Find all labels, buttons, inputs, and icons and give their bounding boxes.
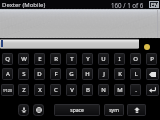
button[interactable]: W: [18, 53, 29, 65]
staticText: E: [38, 55, 42, 63]
button[interactable]: U: [98, 53, 109, 65]
staticText: C: [54, 86, 58, 94]
button[interactable]: EN: [149, 1, 159, 8]
button[interactable]: F: [50, 68, 61, 80]
staticText: M: [117, 86, 123, 94]
button[interactable]: Insert emoticon: [144, 44, 150, 50]
staticText: EN: [151, 1, 158, 8]
staticText: Z: [22, 86, 26, 94]
button[interactable]: !?123: [1, 84, 14, 96]
staticText: T: [70, 55, 74, 63]
staticText: !?123: [3, 88, 12, 93]
button[interactable]: space: [54, 104, 100, 116]
button[interactable]: X: [34, 84, 45, 96]
staticText: L: [134, 70, 138, 78]
button[interactable]: G: [66, 68, 77, 80]
button[interactable]: Voice input: [18, 104, 29, 116]
button[interactable]: C: [50, 84, 61, 96]
staticText: Y: [86, 55, 90, 63]
staticText: Q: [5, 55, 10, 63]
button[interactable]: sym: [104, 104, 124, 116]
button[interactable]: L: [130, 68, 141, 80]
button[interactable]: D: [34, 68, 45, 80]
button[interactable]: J: [98, 68, 109, 80]
button[interactable]: [0, 38, 139, 49]
button[interactable]: Shift: [127, 104, 146, 116]
staticText: W: [21, 55, 27, 63]
staticText: B: [86, 86, 90, 94]
button[interactable]: .: [130, 84, 141, 96]
button[interactable]: K: [114, 68, 125, 80]
button[interactable]: P: [146, 53, 157, 65]
button[interactable]: A: [2, 68, 13, 80]
button[interactable]: B: [82, 84, 93, 96]
staticText: V: [70, 86, 74, 94]
staticText: 160 / 1 of 6: [111, 1, 144, 9]
button[interactable]: O: [130, 53, 141, 65]
staticText: .: [135, 86, 137, 94]
button[interactable]: Backspace: [146, 68, 159, 80]
staticText: G: [69, 70, 74, 78]
button[interactable]: Y: [82, 53, 93, 65]
button[interactable]: V: [66, 84, 77, 96]
staticText: Dexter (Mobile): [2, 1, 46, 9]
button[interactable]: Change keyboard: [33, 104, 44, 116]
button[interactable]: T: [66, 53, 77, 65]
button[interactable]: Enter: [146, 84, 159, 96]
staticText: H: [85, 70, 90, 78]
button[interactable]: H: [82, 68, 93, 80]
staticText: I: [118, 55, 121, 63]
button[interactable]: M: [114, 84, 125, 96]
staticText: D: [37, 70, 42, 78]
button[interactable]: I: [114, 53, 125, 65]
button[interactable]: S: [18, 68, 29, 80]
staticText: K: [118, 70, 122, 78]
staticText: F: [54, 70, 58, 78]
staticText: O: [133, 55, 138, 63]
button[interactable]: N: [98, 84, 109, 96]
button[interactable]: R: [50, 53, 61, 65]
staticText: space: [70, 107, 84, 114]
button[interactable]: E: [34, 53, 45, 65]
button[interactable]: Q: [2, 53, 13, 65]
staticText: S: [22, 70, 26, 78]
staticText: X: [38, 86, 42, 94]
staticText: sym: [109, 107, 119, 114]
staticText: A: [6, 70, 10, 78]
staticText: N: [101, 86, 106, 94]
button[interactable]: Dexter (Mobile): [0, 0, 160, 9]
staticText: P: [150, 55, 154, 63]
button[interactable]: Z: [18, 84, 29, 96]
staticText: R: [54, 55, 58, 63]
staticText: U: [101, 55, 106, 63]
staticText: J: [103, 70, 105, 78]
